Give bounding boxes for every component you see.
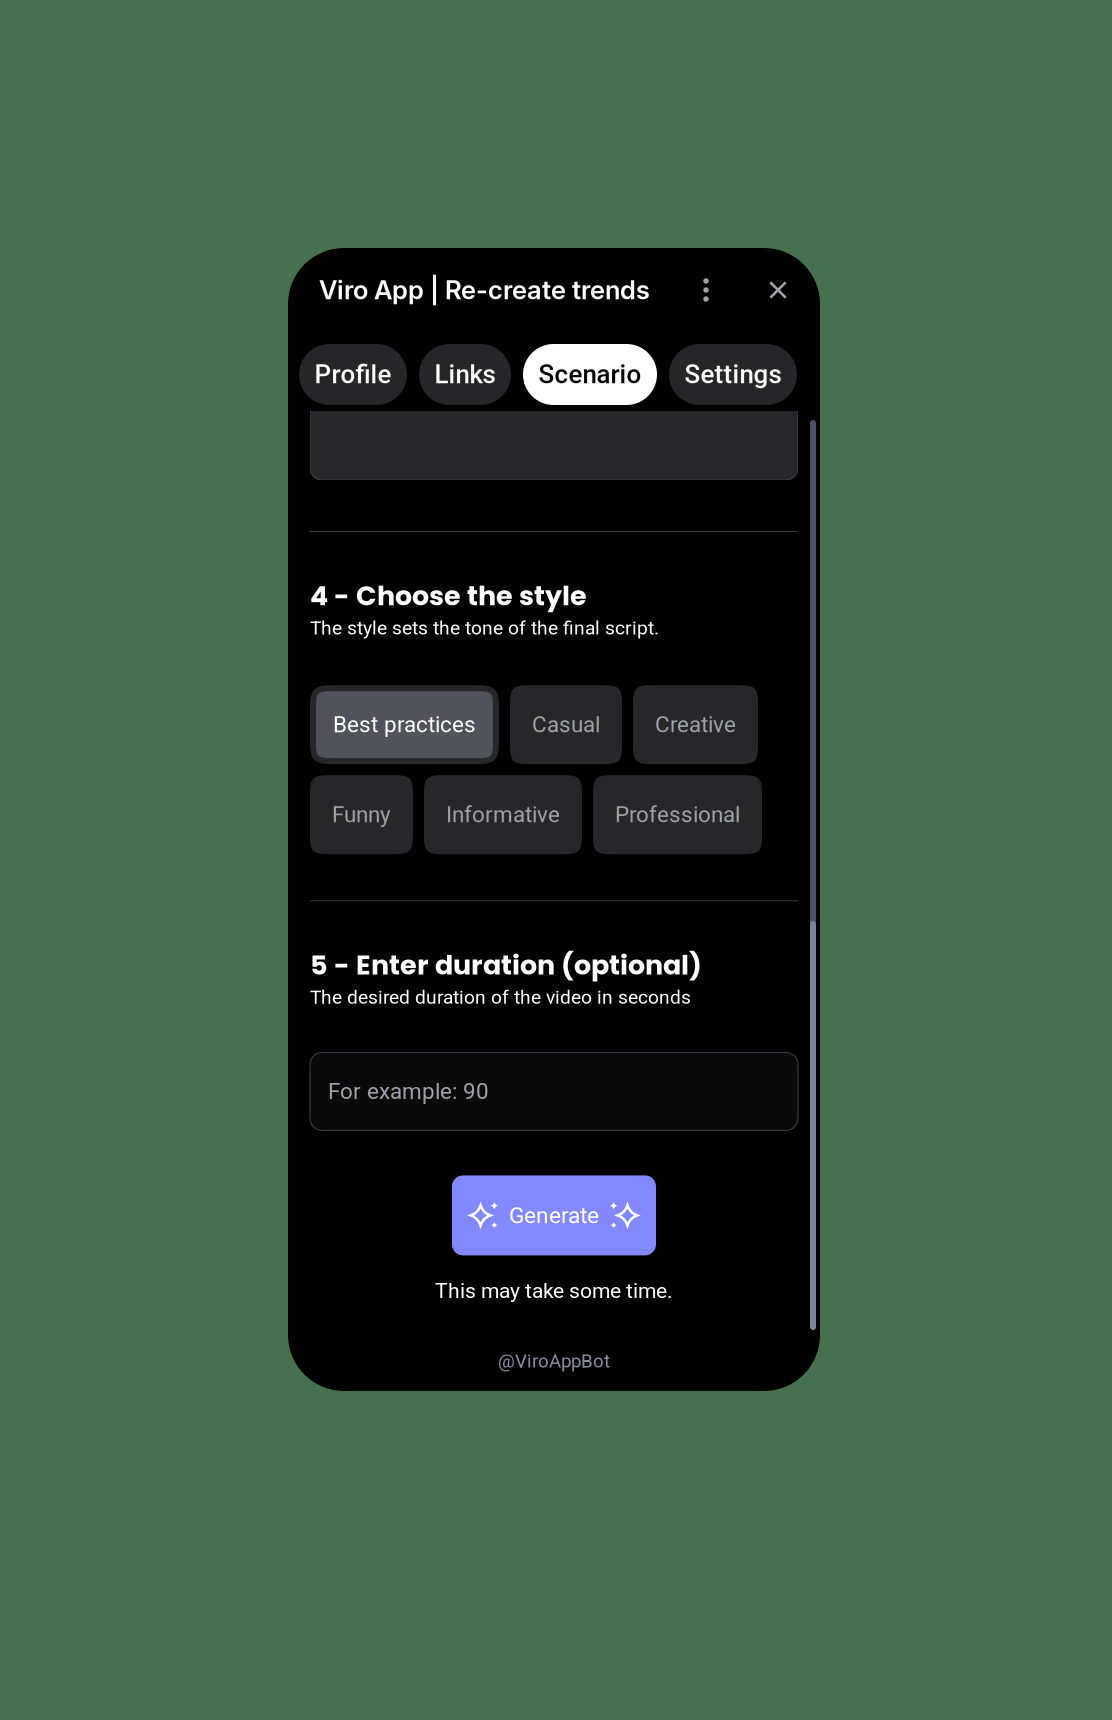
staticText: Settings — [684, 359, 781, 390]
staticText: @ViroAppBot — [498, 1350, 610, 1372]
staticText: Profile — [314, 359, 391, 390]
staticText: Casual — [532, 712, 600, 738]
button[interactable]: Generate — [452, 1175, 656, 1255]
staticText: The style sets the tone of the final scr… — [310, 617, 659, 639]
button[interactable]: Profile — [299, 344, 407, 405]
button[interactable]: Informative — [424, 775, 582, 854]
button[interactable]: Settings — [669, 344, 797, 405]
button[interactable]: For example: 90 — [310, 1052, 798, 1130]
button[interactable]: Funny — [310, 775, 413, 854]
button[interactable]: Links — [419, 344, 511, 405]
staticText: Best practices — [333, 712, 476, 738]
button[interactable]: Close — [748, 266, 808, 314]
button[interactable]: More options — [685, 266, 727, 314]
staticText: 4 - Choose the style — [310, 577, 587, 615]
staticText: Generate — [509, 1202, 599, 1229]
button[interactable]: Casual — [510, 685, 622, 764]
staticText: This may take some time. — [435, 1278, 673, 1303]
staticText: 5 - Enter duration (optional) — [310, 946, 702, 984]
staticText: Links — [434, 359, 495, 390]
staticText: Funny — [332, 802, 391, 828]
staticText: Professional — [615, 802, 740, 828]
button[interactable]: Scenario — [523, 344, 657, 405]
staticText: Viro App | Re-create trends — [319, 274, 650, 305]
button[interactable]: Professional — [593, 775, 762, 854]
staticText: For example: 90 — [328, 1078, 489, 1104]
staticText: Creative — [655, 712, 736, 738]
button[interactable]: Creative — [633, 685, 758, 764]
staticText: Scenario — [538, 359, 641, 390]
button[interactable]: Best practices — [310, 685, 499, 764]
staticText: Informative — [446, 802, 560, 828]
staticText: The desired duration of the video in sec… — [310, 986, 691, 1008]
